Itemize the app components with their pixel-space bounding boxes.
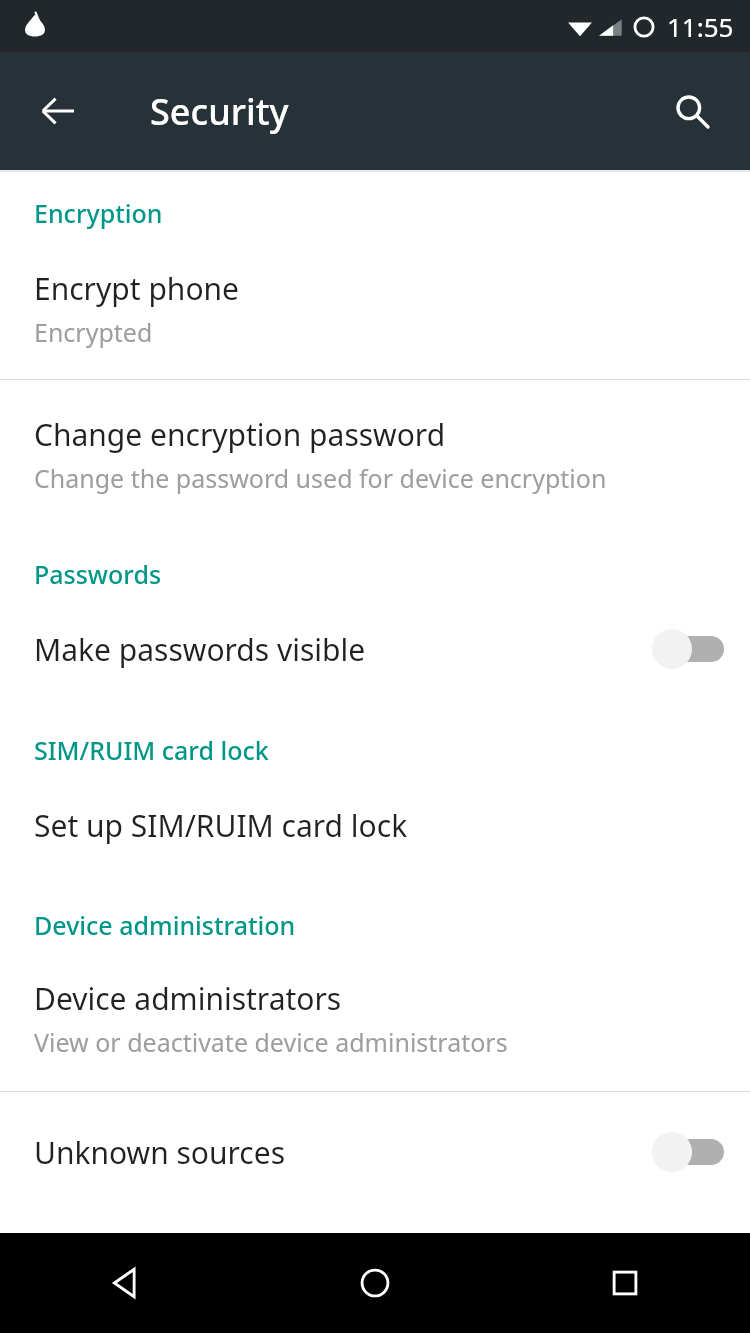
staticText: Change encryption password [34,414,446,455]
staticText: SIM/RUIM card lock [34,733,269,767]
button[interactable]: Recent apps [500,1233,750,1333]
button[interactable]: Home [250,1233,500,1333]
staticText: Unknown sources [34,1132,652,1173]
staticText: Make passwords visible [34,629,652,670]
button[interactable]: Back [0,1233,250,1333]
button[interactable]: Back [10,63,106,159]
staticText: Security [150,87,289,136]
button[interactable]: Change encryption password [0,414,750,495]
button[interactable]: Device administrators [0,978,750,1059]
staticText: Passwords [34,557,162,591]
staticText: Change the password used for device encr… [34,461,607,495]
button[interactable]: Encrypt phone [0,268,750,349]
staticText: 11:55 [667,9,734,44]
staticText: Set up SIM/RUIM card lock [34,805,408,846]
staticText: Device administrators [34,978,342,1019]
button[interactable]: Search [644,63,740,159]
button[interactable]: Make passwords visible [0,627,750,671]
staticText: Encryption [34,196,163,230]
staticText: View or deactivate device administrators [34,1025,508,1059]
button[interactable]: Set up SIM/RUIM card lock [0,805,750,846]
staticText: Encrypted [34,315,153,349]
staticText: Encrypt phone [34,268,239,309]
button[interactable]: Unknown sources [0,1130,750,1174]
staticText: Device administration [34,908,296,942]
